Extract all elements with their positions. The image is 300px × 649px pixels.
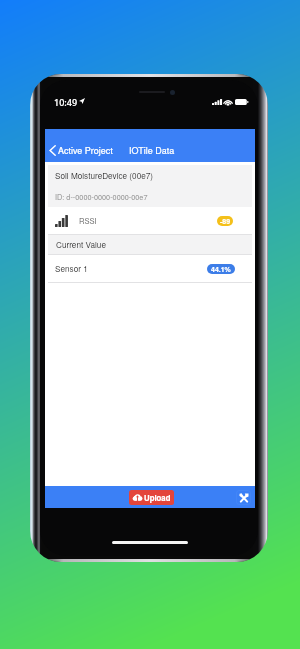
staticText: -89: [220, 216, 231, 226]
staticText: IOTile Data: [129, 144, 175, 157]
staticText: 10:49: [54, 96, 78, 108]
staticText: Upload: [144, 492, 171, 503]
button[interactable]: Tools: [236, 490, 251, 505]
button[interactable]: RSSI: [48, 207, 252, 234]
staticText: Soil MoistureDevice (00e7): [55, 170, 154, 182]
staticText: 44.1%: [211, 264, 231, 274]
staticText: Current Value: [56, 239, 106, 251]
staticText: Sensor 1: [55, 263, 88, 275]
staticText: ID: d--0000-0000-0000-00e7: [55, 192, 148, 202]
staticText: Active Project: [58, 144, 113, 157]
button[interactable]: Upload: [129, 490, 174, 505]
button[interactable]: Active Project: [45, 140, 117, 162]
staticText: RSSI: [79, 215, 97, 226]
button[interactable]: Sensor 1: [48, 255, 252, 282]
